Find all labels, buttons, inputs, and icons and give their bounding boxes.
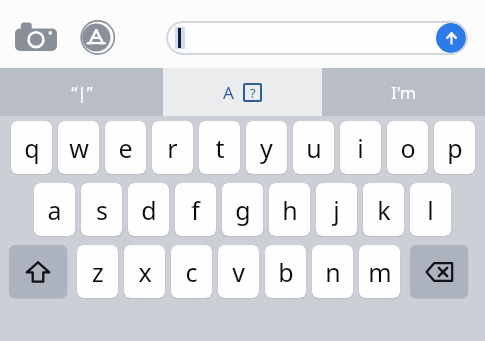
- staticText: e: [118, 131, 133, 165]
- button[interactable]: c: [171, 245, 212, 298]
- button[interactable]: o: [387, 121, 428, 174]
- staticText: t: [215, 131, 225, 165]
- button[interactable]: z: [77, 245, 118, 298]
- button[interactable]: t: [199, 121, 240, 174]
- button[interactable]: p: [434, 121, 475, 174]
- button[interactable]: i: [340, 121, 381, 174]
- button[interactable]: r: [152, 121, 193, 174]
- staticText: “|”: [71, 81, 93, 104]
- button[interactable]: w: [58, 121, 99, 174]
- button[interactable]: x: [124, 245, 165, 298]
- staticText: b: [278, 255, 294, 289]
- button[interactable]: Send: [166, 21, 468, 55]
- staticText: h: [282, 193, 298, 227]
- button[interactable]: s: [81, 183, 122, 236]
- button[interactable]: Camera: [14, 21, 58, 51]
- staticText: x: [138, 255, 152, 289]
- staticText: A: [223, 81, 234, 104]
- button[interactable]: f: [175, 183, 216, 236]
- staticText: f: [191, 193, 200, 227]
- button[interactable]: e: [105, 121, 146, 174]
- button[interactable]: A: [163, 68, 322, 116]
- button[interactable]: h: [269, 183, 310, 236]
- button[interactable]: j: [316, 183, 357, 236]
- staticText: n: [325, 255, 341, 289]
- button[interactable]: Send: [436, 23, 466, 53]
- button[interactable]: m: [359, 245, 400, 298]
- staticText: m: [368, 255, 392, 289]
- staticText: k: [377, 193, 391, 227]
- staticText: i: [357, 131, 364, 165]
- button[interactable]: “|”: [0, 68, 163, 116]
- button[interactable]: y: [246, 121, 287, 174]
- button[interactable]: Delete: [410, 245, 468, 298]
- staticText: j: [333, 193, 340, 227]
- button[interactable]: b: [265, 245, 306, 298]
- staticText: g: [235, 193, 251, 227]
- staticText: a: [47, 193, 62, 227]
- button[interactable]: d: [128, 183, 169, 236]
- staticText: u: [306, 131, 322, 165]
- button[interactable]: App Store: [80, 21, 118, 53]
- staticText: q: [24, 131, 40, 165]
- staticText: p: [447, 131, 463, 165]
- staticText: y: [260, 131, 273, 165]
- button[interactable]: k: [363, 183, 404, 236]
- button[interactable]: a: [34, 183, 75, 236]
- staticText: I'm: [391, 81, 416, 104]
- button[interactable]: q: [11, 121, 52, 174]
- staticText: l: [427, 193, 434, 227]
- staticText: d: [141, 193, 157, 227]
- staticText: w: [69, 131, 89, 165]
- button[interactable]: l: [410, 183, 451, 236]
- staticText: v: [232, 255, 245, 289]
- staticText: s: [96, 193, 108, 227]
- staticText: r: [167, 131, 178, 165]
- button[interactable]: v: [218, 245, 259, 298]
- staticText: ?: [250, 84, 256, 102]
- staticText: c: [185, 255, 198, 289]
- button[interactable]: Shift: [9, 245, 67, 298]
- button[interactable]: I'm: [322, 68, 485, 116]
- button[interactable]: n: [312, 245, 353, 298]
- button[interactable]: u: [293, 121, 334, 174]
- staticText: z: [92, 255, 104, 289]
- button[interactable]: g: [222, 183, 263, 236]
- staticText: o: [400, 131, 416, 165]
